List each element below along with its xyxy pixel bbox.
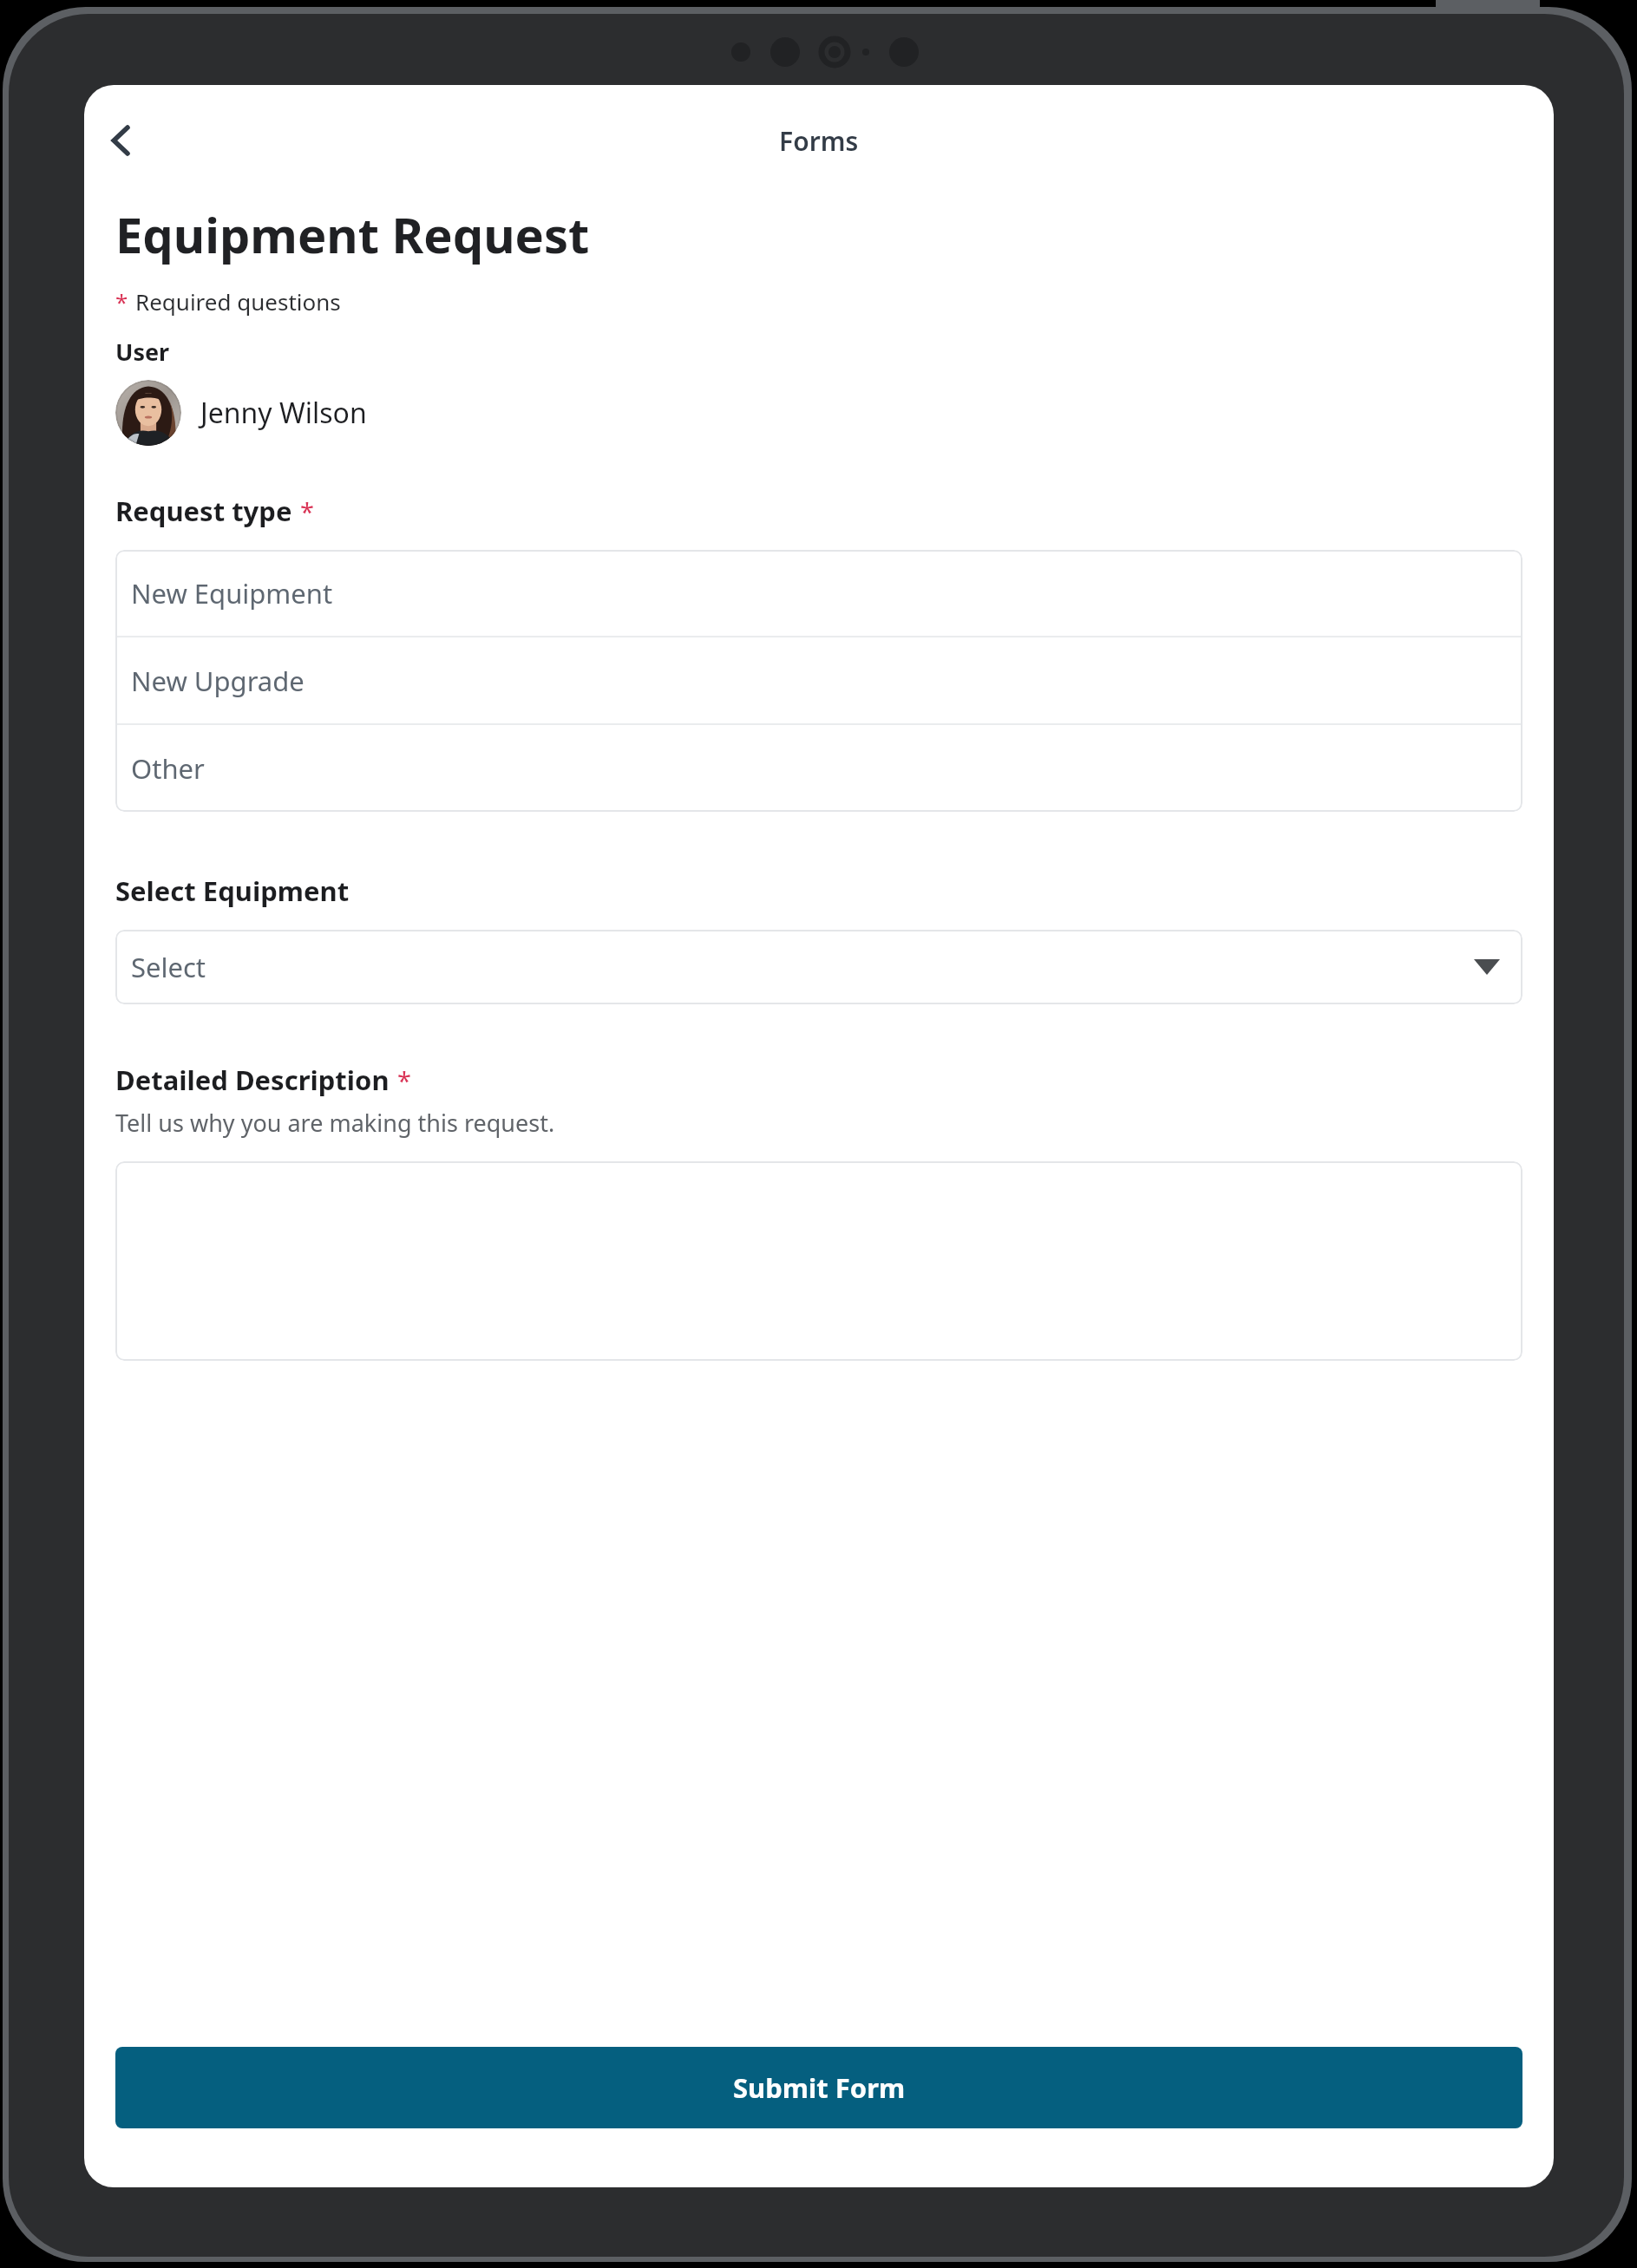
staticText: Forms <box>779 123 859 159</box>
staticText: New Upgrade <box>131 663 304 699</box>
staticText: Tell us why you are making this request. <box>115 1107 555 1139</box>
button[interactable]: New Upgrade <box>115 637 1522 725</box>
staticText: User <box>115 336 170 368</box>
button[interactable]: Submit Form <box>115 2047 1522 2128</box>
staticText: Request type <box>115 493 292 529</box>
button[interactable] <box>115 1161 1522 1361</box>
staticText: Select <box>131 949 206 985</box>
staticText: Select Equipment <box>115 873 350 909</box>
button[interactable]: Jenny Wilson <box>115 380 367 446</box>
button[interactable]: Other <box>115 725 1522 812</box>
button[interactable]: Back <box>84 103 159 178</box>
staticText: Detailed Description <box>115 1062 390 1098</box>
staticText: Submit Form <box>733 2069 906 2106</box>
staticText: New Equipment <box>131 575 333 611</box>
button[interactable]: New Equipment <box>115 550 1522 637</box>
staticText: Equipment Request <box>115 201 590 267</box>
staticText: Jenny Wilson <box>200 394 367 432</box>
button[interactable]: Select <box>115 930 1522 1004</box>
staticText: Other <box>131 750 205 787</box>
staticText: Required questions <box>135 286 341 317</box>
staticText: * <box>397 1063 411 1097</box>
staticText: * <box>300 494 314 528</box>
staticText: * <box>115 286 128 317</box>
